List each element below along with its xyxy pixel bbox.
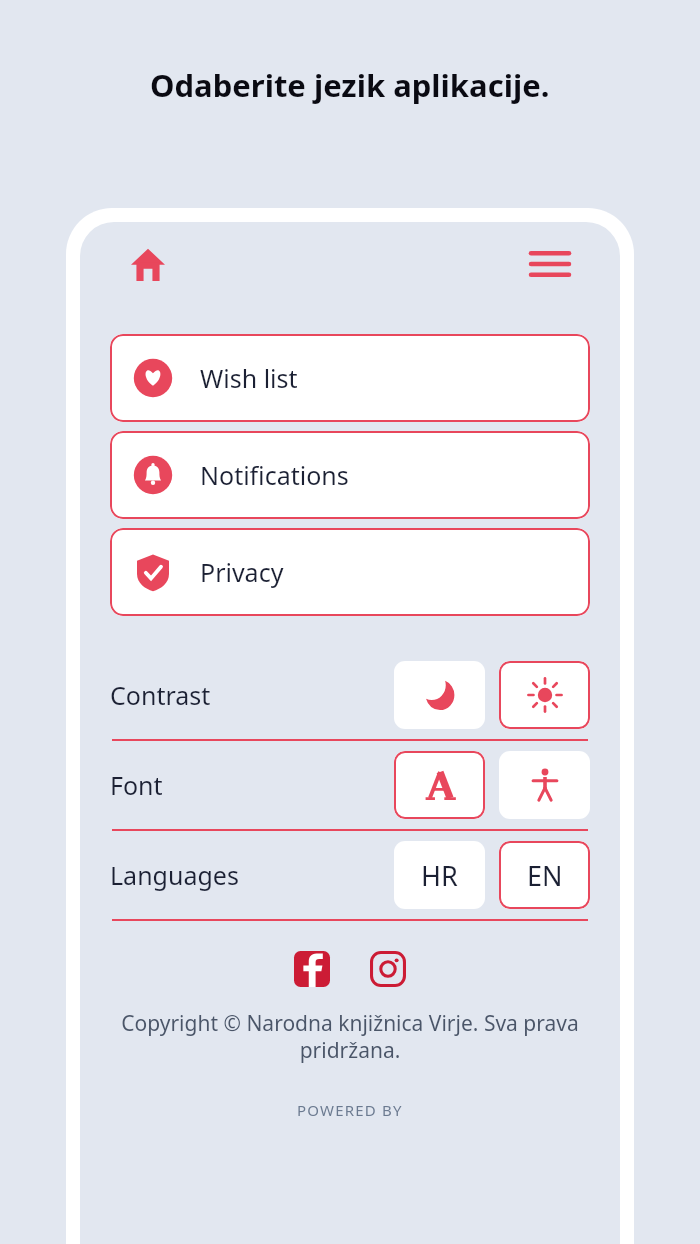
staticText: Odaberite jezik aplikacije. xyxy=(150,64,550,106)
staticText: Languages xyxy=(110,858,239,892)
button[interactable]: Notifications xyxy=(110,431,590,519)
staticText: Font xyxy=(110,768,163,802)
staticText: Notifications xyxy=(200,458,349,492)
button[interactable]: Font option 2 xyxy=(499,751,590,819)
button[interactable]: Contrast option 1 xyxy=(394,661,485,729)
button[interactable]: Wish list xyxy=(110,334,590,422)
button[interactable]: Privacy xyxy=(110,528,590,616)
button[interactable]: Facebook xyxy=(290,947,334,991)
staticText: POWERED BY xyxy=(297,1100,403,1120)
button[interactable]: Home xyxy=(128,244,168,284)
staticText: EN xyxy=(527,857,563,894)
staticText: HR xyxy=(421,857,458,894)
button[interactable]: Instagram xyxy=(366,947,410,991)
staticText: Privacy xyxy=(200,555,284,589)
button[interactable]: Contrast option 2 xyxy=(499,661,590,729)
button[interactable]: Menu xyxy=(528,242,572,286)
button[interactable]: EN xyxy=(499,841,590,909)
staticText: Copyright © Narodna knjižnica Virje. Sva… xyxy=(106,1009,594,1064)
staticText: Wish list xyxy=(200,361,298,395)
button[interactable]: HR xyxy=(394,841,485,909)
staticText: Contrast xyxy=(110,678,211,712)
button[interactable]: Font option 1 xyxy=(394,751,485,819)
